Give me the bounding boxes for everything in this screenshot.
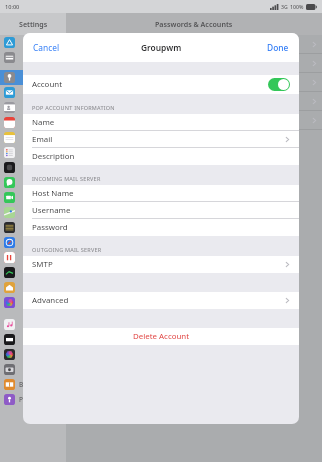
- staticText: Done: [267, 42, 289, 53]
- button[interactable]: CAMERA: [0, 362, 66, 377]
- staticText: POP ACCOUNT INFORMATION: [32, 104, 115, 111]
- staticText: Delete Account: [133, 331, 190, 342]
- staticText: Password: [32, 222, 68, 233]
- button[interactable]: Advanced: [23, 292, 299, 309]
- button[interactable]: WATCH: [0, 160, 66, 175]
- button[interactable]: CALENDAR: [0, 115, 66, 130]
- button[interactable]: [66, 54, 322, 72]
- staticText: Host Name: [32, 188, 74, 199]
- button[interactable]: TV: [0, 332, 66, 347]
- button[interactable]: COMPASS: [0, 220, 66, 235]
- button[interactable]: REMINDERS: [0, 145, 66, 160]
- button[interactable]: Books: [0, 377, 66, 392]
- button[interactable]: STORE: [0, 35, 66, 50]
- staticText: Email: [32, 134, 53, 145]
- staticText: Groupwm: [141, 42, 182, 53]
- button[interactable]: NOTES: [0, 130, 66, 145]
- staticText: Passwords & Accounts: [155, 19, 233, 29]
- button[interactable]: MESSAGES: [0, 175, 66, 190]
- button[interactable]: FACETIME: [0, 190, 66, 205]
- staticText: OUTGOING MAIL SERVER: [32, 246, 102, 253]
- button[interactable]: Cancel: [27, 37, 66, 58]
- button[interactable]: PHOTOS: [0, 347, 66, 362]
- button[interactable]: Delete Account: [23, 328, 299, 345]
- button[interactable]: [66, 73, 322, 91]
- staticText: Settings: [19, 19, 48, 29]
- button[interactable]: MUSIC: [0, 317, 66, 332]
- button[interactable]: Name: [23, 114, 299, 131]
- button[interactable]: Podcasts: [0, 392, 66, 407]
- staticText: INCOMING MAIL SERVER: [32, 175, 101, 182]
- button[interactable]: MAIL: [0, 85, 66, 100]
- staticText: 10:00: [5, 3, 20, 11]
- button[interactable]: MAPS: [0, 205, 66, 220]
- staticText: 3G: [281, 3, 288, 10]
- button[interactable]: STOCKS: [0, 265, 66, 280]
- staticText: Books: [19, 380, 38, 389]
- button[interactable]: PHOTOS: [0, 295, 66, 310]
- button[interactable]: Password: [23, 219, 299, 236]
- button[interactable]: SAFARI: [0, 235, 66, 250]
- staticText: Name: [32, 117, 55, 128]
- button[interactable]: Account enabled: [268, 78, 290, 91]
- button[interactable]: [66, 92, 322, 110]
- staticText: Podcasts: [19, 395, 47, 404]
- button[interactable]: Description: [23, 148, 299, 165]
- button[interactable]: Done: [261, 37, 295, 58]
- staticText: Username: [32, 205, 71, 216]
- button[interactable]: WALLET: [0, 50, 66, 65]
- button[interactable]: CONTACTS: [0, 100, 66, 115]
- button[interactable]: [66, 35, 322, 53]
- button[interactable]: Email: [23, 131, 299, 148]
- staticText: Cancel: [33, 42, 60, 53]
- button[interactable]: KEY: [0, 70, 66, 85]
- button[interactable]: SMTP: [23, 256, 299, 273]
- button[interactable]: Username: [23, 202, 299, 219]
- staticText: Description: [32, 151, 75, 162]
- button[interactable]: Host Name: [23, 185, 299, 202]
- staticText: SMTP: [32, 259, 53, 270]
- staticText: Advanced: [32, 295, 69, 306]
- button[interactable]: HOME: [0, 280, 66, 295]
- staticText: 100%: [290, 3, 304, 10]
- button[interactable]: NEWS: [0, 250, 66, 265]
- staticText: Account: [32, 79, 62, 90]
- button[interactable]: Account: [23, 75, 299, 94]
- button[interactable]: [66, 111, 322, 129]
